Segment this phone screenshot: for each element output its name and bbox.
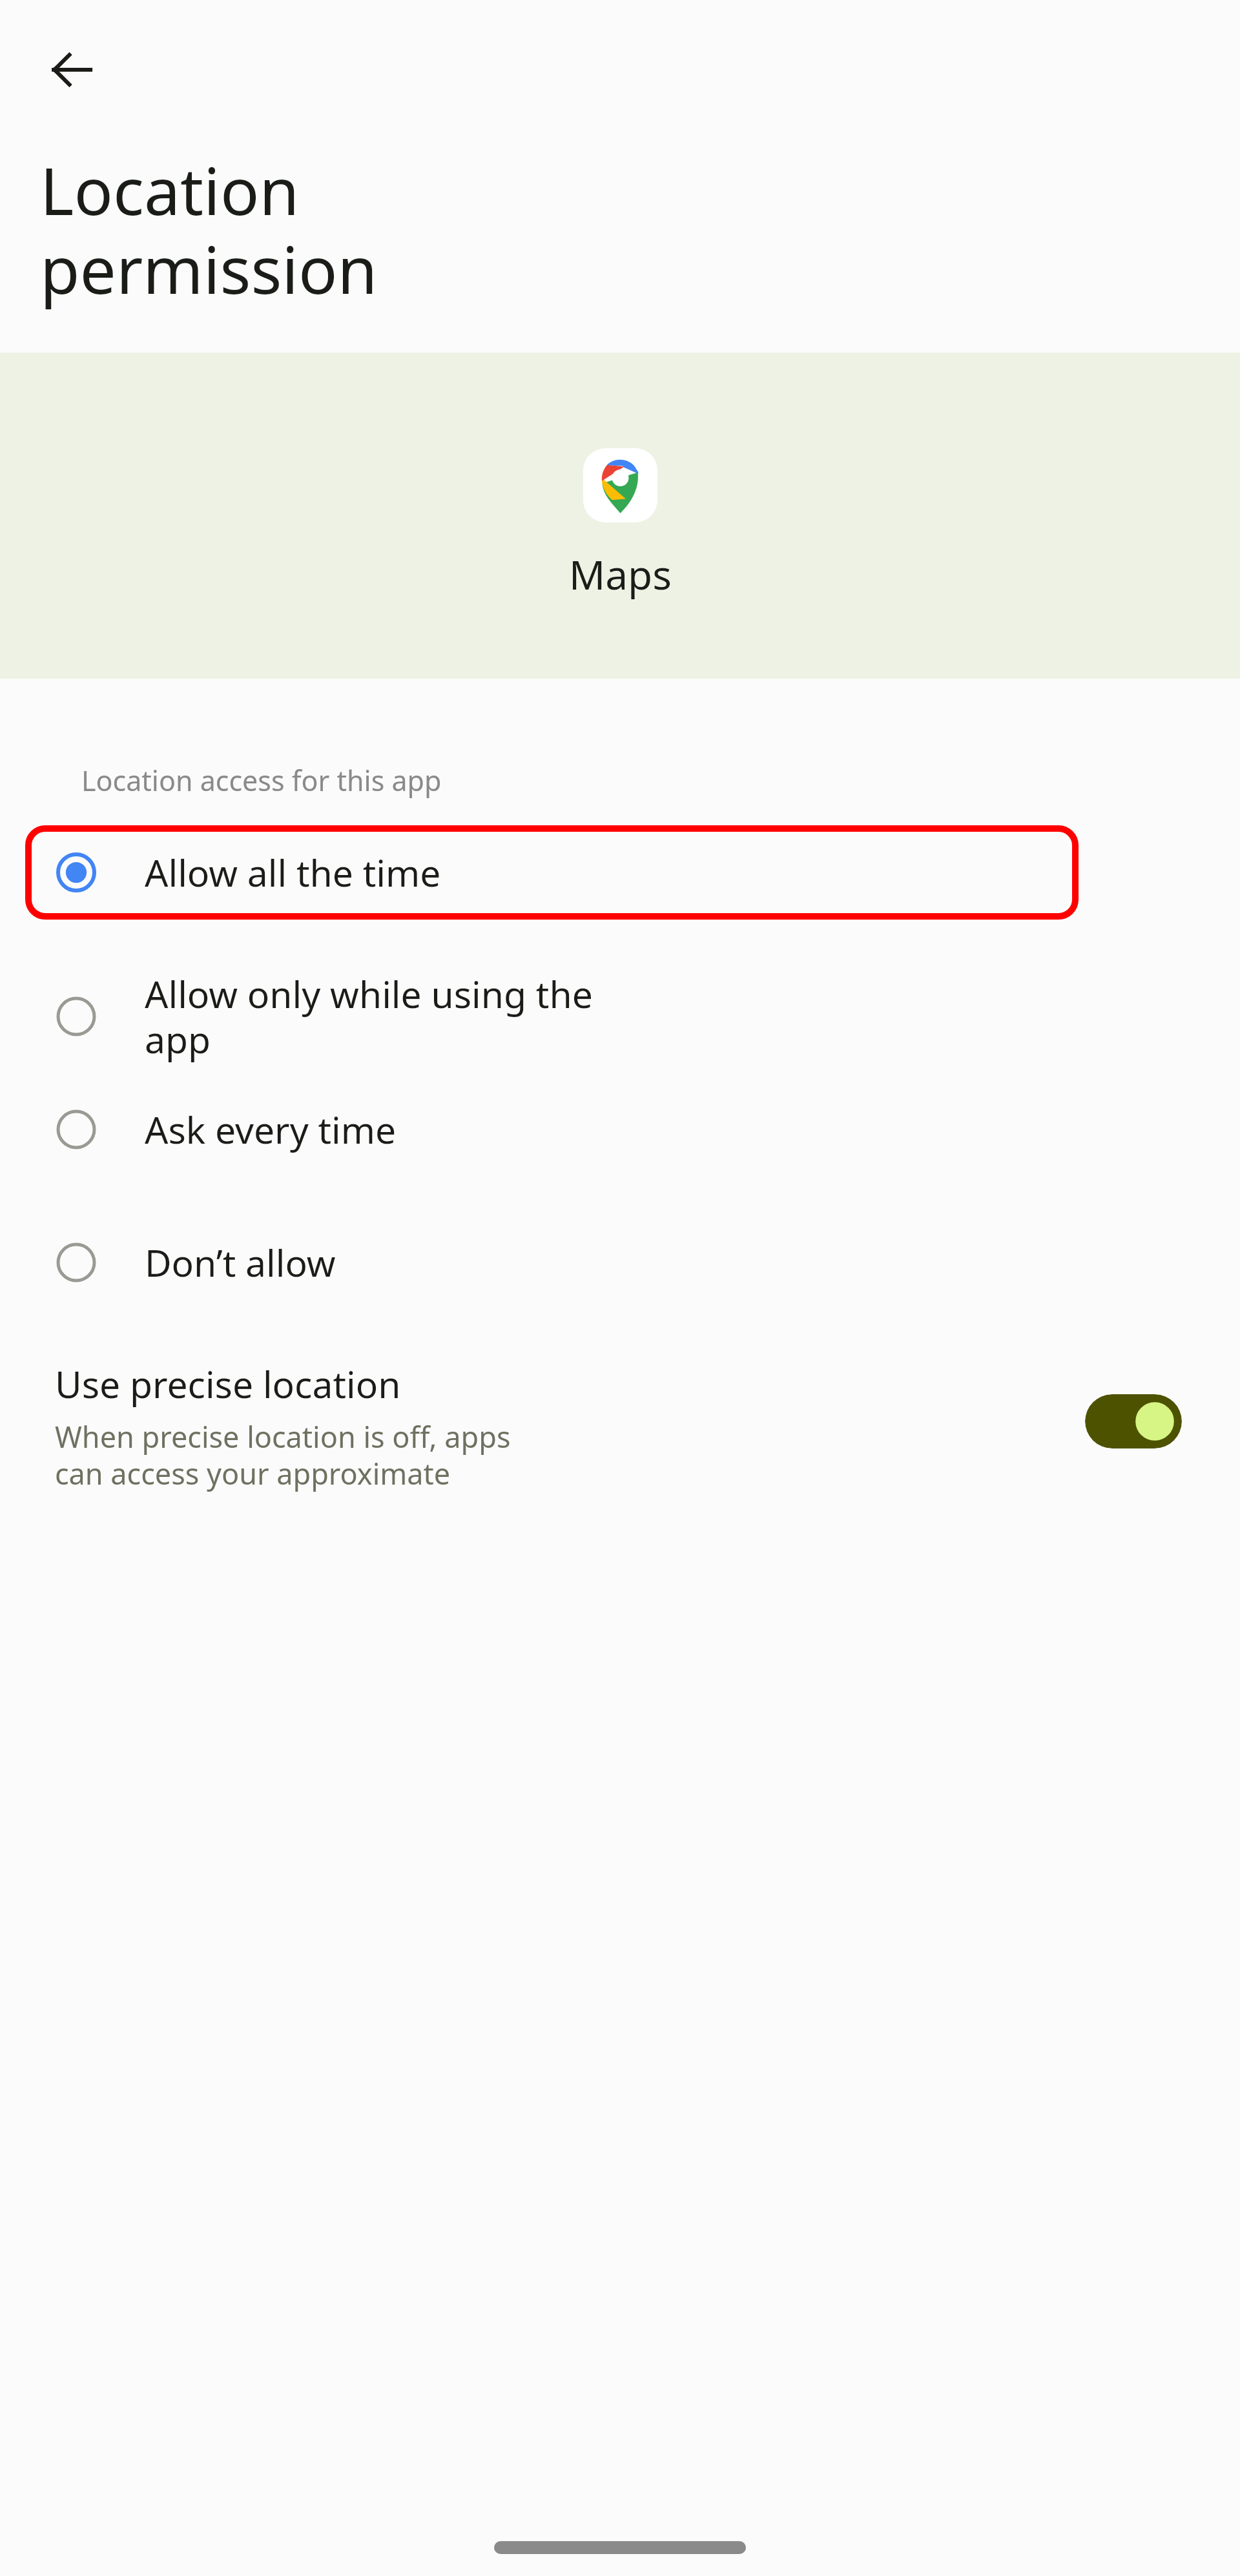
button[interactable]: Use precise location: [0, 1359, 1240, 1493]
staticText: When precise location is off, apps can a…: [55, 1417, 511, 1493]
button[interactable]: Allow only while using the app: [0, 969, 1240, 1064]
button[interactable]: Don’t allow: [0, 1237, 1240, 1288]
button[interactable]: Allow all the time: [25, 825, 1079, 920]
staticText: Allow all the time: [145, 847, 441, 898]
staticText: Allow only while using the app: [145, 969, 593, 1064]
staticText: Location permission: [40, 146, 378, 313]
staticText: Location access for this app: [81, 761, 442, 799]
button[interactable]: Ask every time: [0, 1104, 1240, 1155]
staticText: Use precise location: [55, 1359, 401, 1409]
button[interactable]: Back: [39, 37, 103, 102]
staticText: Maps: [569, 547, 672, 601]
staticText: Don’t allow: [145, 1237, 336, 1288]
staticText: Ask every time: [145, 1104, 397, 1155]
button[interactable]: Use precise location toggle: [1085, 1394, 1182, 1448]
